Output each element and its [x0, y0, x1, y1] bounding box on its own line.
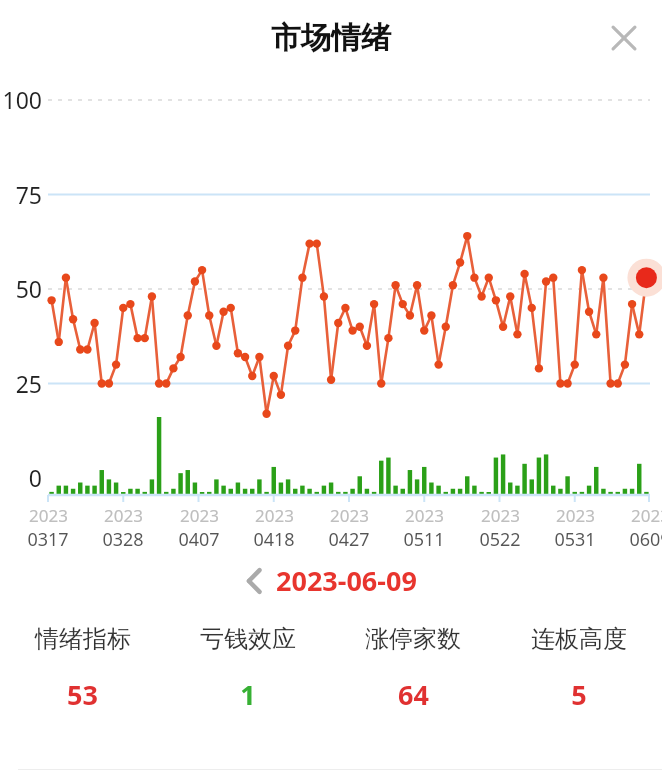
staticText: 5 — [571, 676, 587, 713]
staticText: 0511 — [403, 527, 445, 552]
staticText: 25 — [15, 368, 42, 399]
staticText: 2023 — [631, 504, 662, 527]
staticText: 50 — [15, 273, 42, 304]
staticText: 市场情绪 — [271, 19, 391, 57]
staticText: 0531 — [554, 527, 596, 552]
staticText: 连板高度 — [531, 624, 627, 654]
staticText: 2023 — [330, 504, 369, 527]
button[interactable]: 连板高度 — [496, 616, 662, 721]
staticText: 2023 — [180, 504, 219, 527]
button[interactable]: Close — [602, 16, 646, 60]
button[interactable]: 2023-06-09 — [238, 558, 425, 603]
button[interactable]: 涨停家数 — [330, 616, 496, 721]
staticText: 2023 — [556, 504, 595, 527]
staticText: 0317 — [27, 527, 69, 552]
staticText: 0427 — [328, 527, 370, 552]
staticText: 0 — [28, 462, 42, 493]
staticText: 0522 — [479, 527, 521, 552]
staticText: 2023-06-09 — [276, 562, 417, 599]
staticText: 2023 — [104, 504, 143, 527]
staticText: 亏钱效应 — [200, 624, 296, 654]
staticText: 2023 — [481, 504, 520, 527]
staticText: 0328 — [102, 527, 144, 552]
button[interactable]: 亏钱效应 — [165, 616, 330, 721]
staticText: 2023 — [255, 504, 294, 527]
staticText: 64 — [398, 676, 429, 713]
staticText: 0407 — [178, 527, 220, 552]
staticText: 0609 — [629, 527, 662, 552]
button[interactable]: 情绪指标 — [0, 616, 165, 721]
staticText: 2023 — [405, 504, 444, 527]
staticText: 53 — [67, 676, 98, 713]
staticText: 2023 — [29, 504, 68, 527]
staticText: 0418 — [253, 527, 295, 552]
staticText: 100 — [2, 84, 42, 115]
staticText: 1 — [240, 676, 256, 713]
staticText: 情绪指标 — [35, 624, 131, 654]
staticText: 75 — [15, 179, 42, 210]
staticText: 涨停家数 — [365, 624, 461, 654]
